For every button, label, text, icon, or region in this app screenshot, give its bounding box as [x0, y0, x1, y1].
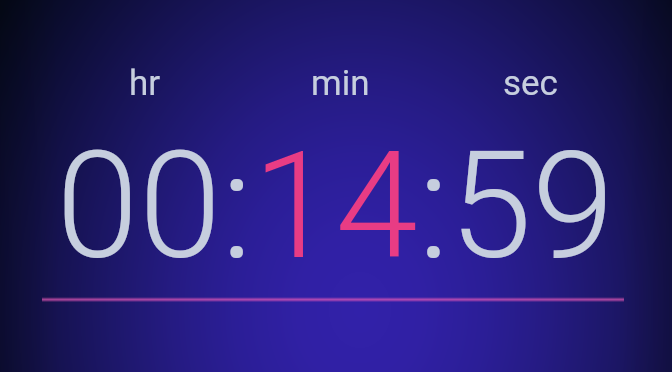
button[interactable]: 00:14:59 [56, 119, 615, 294]
staticText: min [311, 63, 370, 104]
button[interactable]: Set minutes [311, 63, 370, 104]
staticText: sec [503, 63, 558, 104]
staticText: hr [129, 63, 161, 104]
button[interactable]: Set hours [129, 63, 161, 104]
button[interactable]: Set seconds [503, 63, 558, 104]
staticText: 00:14:59 [56, 119, 615, 294]
